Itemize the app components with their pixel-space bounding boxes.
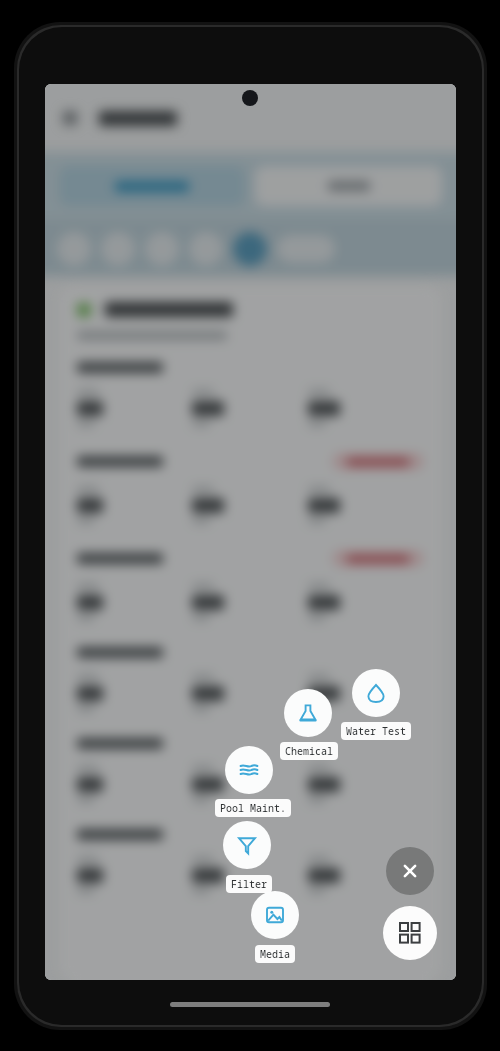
button[interactable]: Water Test <box>341 722 411 740</box>
button[interactable]: Media <box>251 891 299 939</box>
button[interactable]: Media <box>255 945 295 963</box>
button[interactable]: Filter <box>223 821 271 869</box>
staticText: Pool Maint. <box>220 801 286 815</box>
button[interactable]: Chemical <box>280 742 338 760</box>
button[interactable]: Chemical <box>284 689 332 737</box>
staticText: Filter <box>231 877 267 891</box>
button[interactable]: Filter <box>226 875 272 893</box>
button[interactable]: Pool Maint. <box>225 746 273 794</box>
staticText: Media <box>260 947 290 961</box>
staticText: Water Test <box>346 724 406 738</box>
staticText: Chemical <box>285 744 333 758</box>
button[interactable]: Quick actions <box>383 906 437 960</box>
button[interactable]: Water Test <box>352 669 400 717</box>
button[interactable]: Close menu <box>386 847 434 895</box>
button[interactable]: Pool Maint. <box>215 799 291 817</box>
